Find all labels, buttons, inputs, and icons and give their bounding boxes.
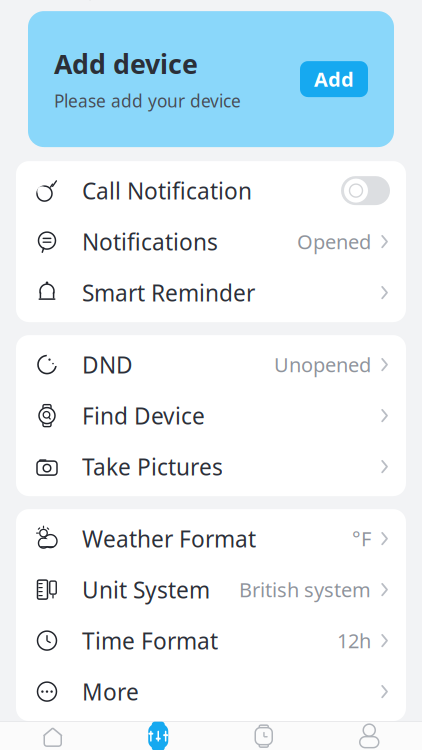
button[interactable]: Find Device: [16, 390, 406, 441]
staticText: Smart Reminder: [82, 277, 255, 308]
staticText: British system: [239, 576, 371, 603]
button[interactable]: Time Format: [16, 615, 406, 666]
button[interactable]: Add: [300, 61, 368, 97]
staticText: More: [82, 676, 139, 707]
staticText: Add device: [54, 46, 198, 81]
staticText: Unopened: [274, 351, 371, 378]
staticText: Notifications: [82, 226, 218, 257]
staticText: Opened: [297, 228, 371, 255]
staticText: Time Format: [82, 625, 218, 656]
button[interactable]: DND: [16, 339, 406, 390]
button[interactable]: Device: [105, 722, 211, 750]
staticText: 12h: [337, 627, 371, 654]
button[interactable]: Smart Reminder: [16, 267, 406, 318]
button[interactable]: Me: [316, 722, 422, 750]
button[interactable]: More: [16, 666, 406, 717]
staticText: Add: [314, 66, 354, 92]
staticText: Find Device: [82, 400, 205, 431]
staticText: DND: [82, 349, 133, 380]
button[interactable]: Health: [0, 722, 105, 750]
button[interactable]: Take Pictures: [16, 441, 406, 492]
staticText: Please add your device: [54, 89, 241, 112]
staticText: Weather Format: [82, 523, 256, 554]
staticText: Take Pictures: [82, 451, 223, 482]
staticText: °F: [352, 525, 371, 552]
button[interactable]: Notifications: [16, 216, 406, 267]
staticText: Call Notification: [82, 175, 252, 206]
button[interactable]: Unit System: [16, 564, 406, 615]
button[interactable]: Dial: [211, 722, 316, 750]
button[interactable]: Weather Format: [16, 513, 406, 564]
staticText: Unit System: [82, 574, 210, 605]
button[interactable]: Call Notification: [16, 165, 406, 216]
